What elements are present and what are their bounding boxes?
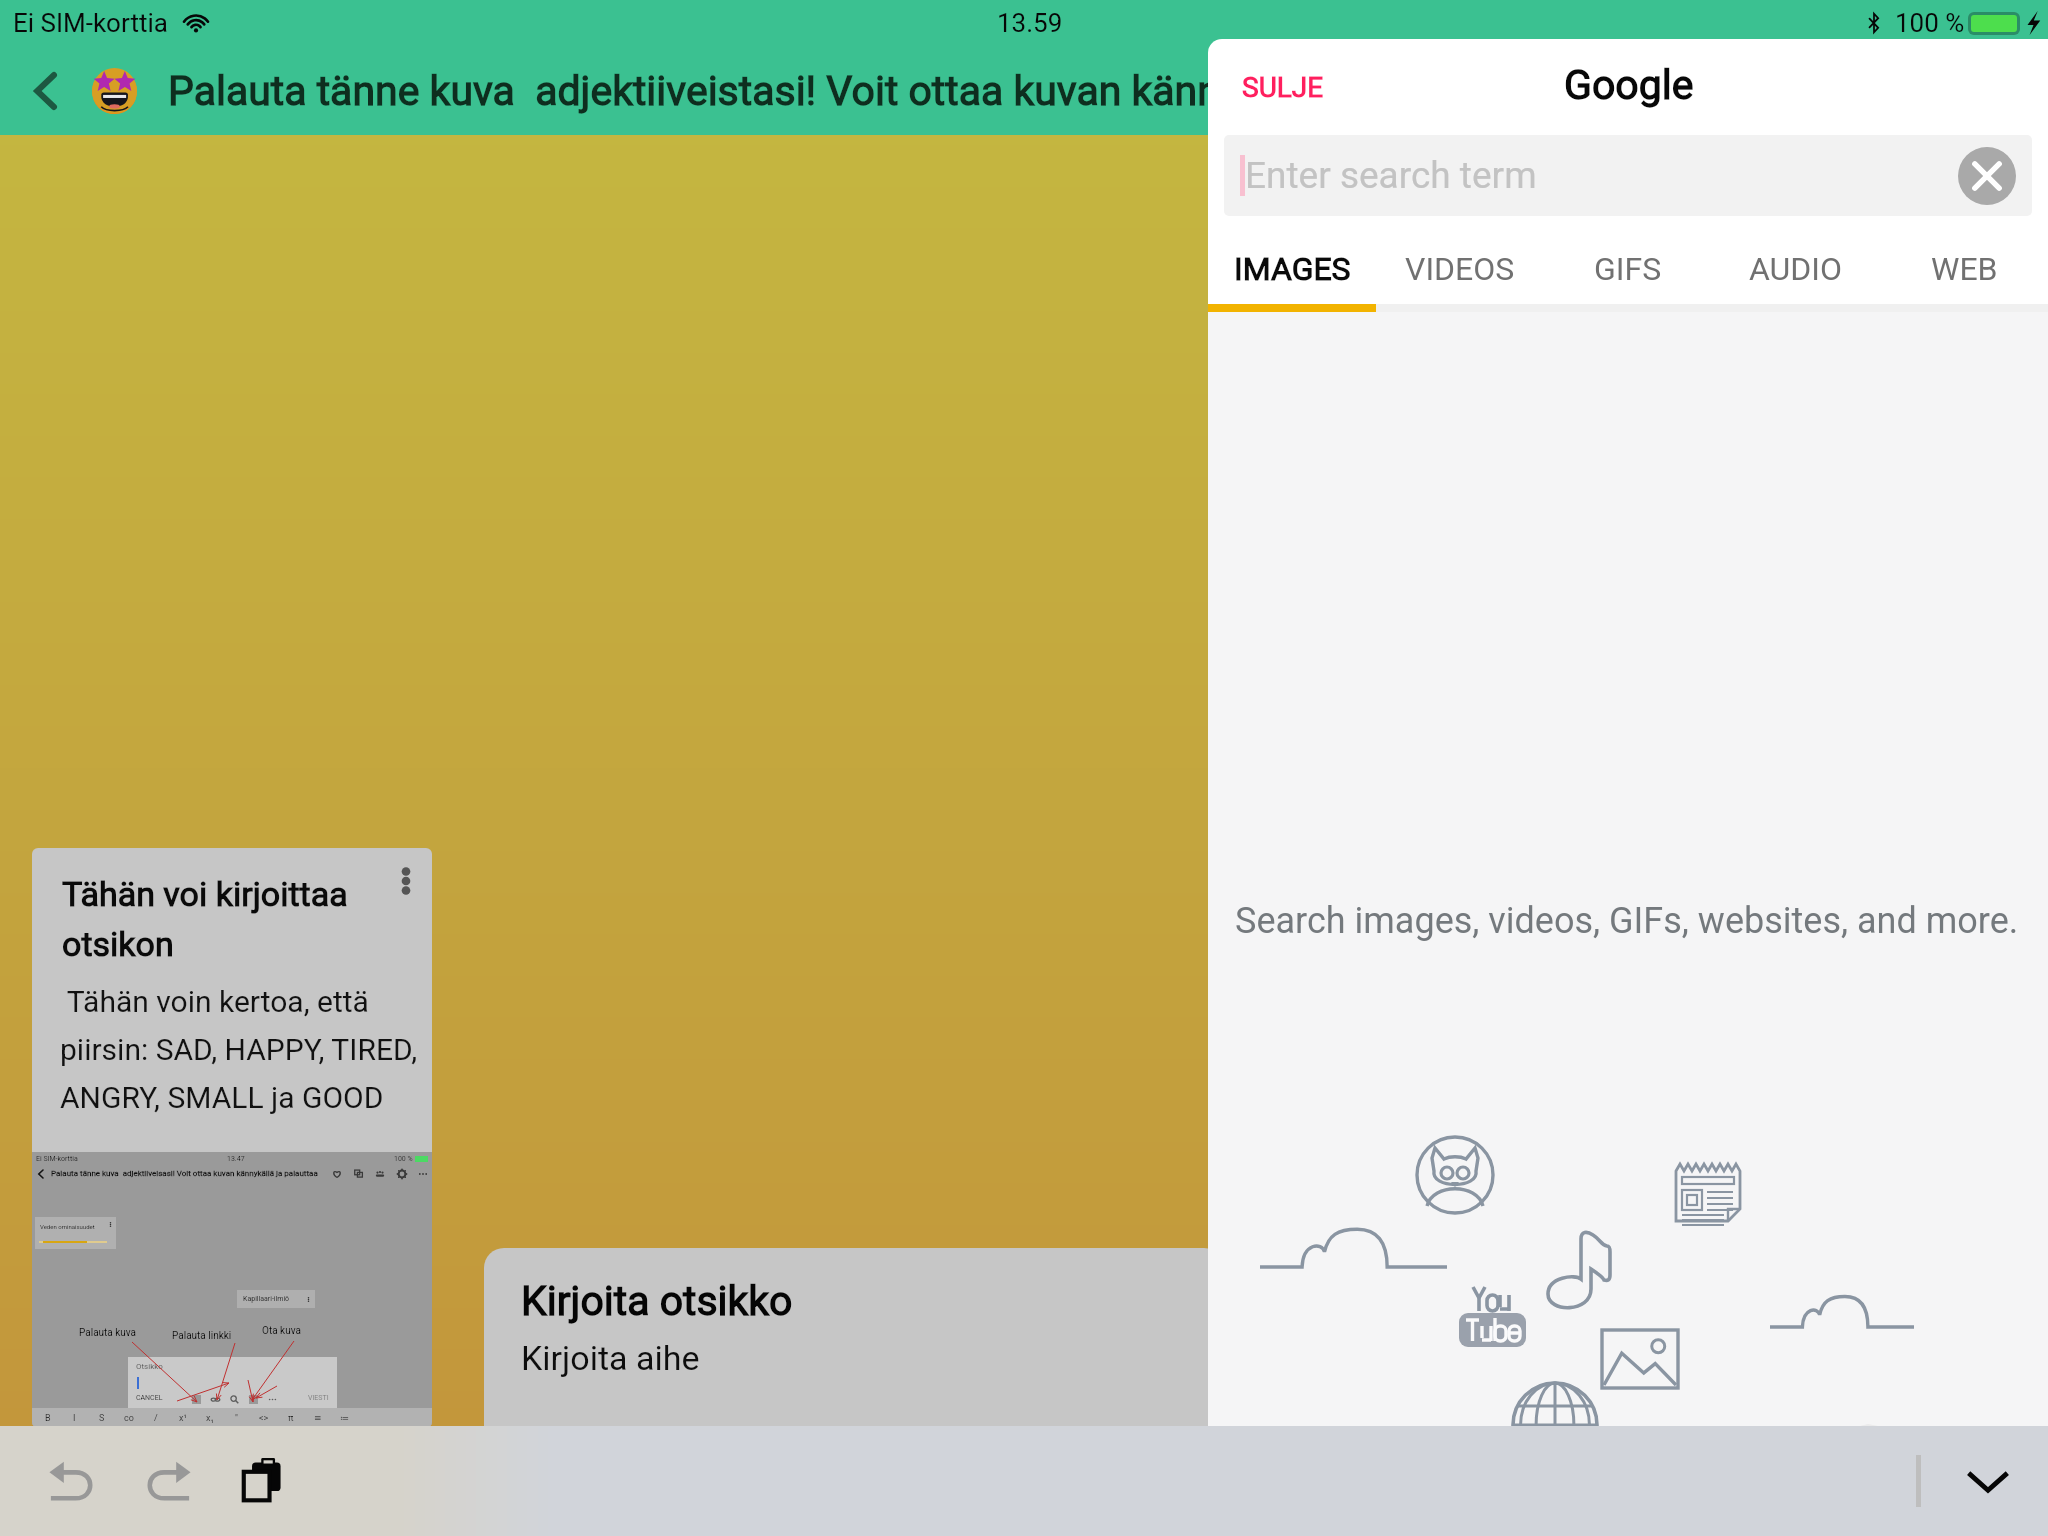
button[interactable]: Clear search (1958, 147, 2016, 205)
staticText: 100 % (394, 1155, 413, 1163)
staticText: / (154, 1413, 158, 1424)
staticText: x₁ (206, 1413, 214, 1424)
button[interactable]: Undo (26, 1435, 118, 1527)
button[interactable]: GIFS (1544, 233, 1712, 304)
staticText: Kapillaari-ilmiö (243, 1295, 290, 1303)
button[interactable]: AUDIO (1712, 233, 1880, 304)
button[interactable]: WEB (1880, 233, 2048, 304)
staticText: Palauta tänne kuva adjektiiveistasi! Voi… (168, 67, 1220, 115)
staticText: SULJE (1242, 71, 1324, 104)
staticText: Kirjoita otsikko (521, 1277, 793, 1325)
staticText: Palauta tänne kuva adjektiiveisasi! Voit… (51, 1169, 322, 1178)
staticText: 100 % (1895, 8, 1965, 38)
button[interactable]: Collapse (1947, 1440, 2029, 1522)
staticText: Enter search term (1245, 154, 1537, 197)
staticText: VIESTI (308, 1394, 329, 1402)
button[interactable]: Back (12, 57, 80, 125)
button[interactable]: Redo (122, 1435, 214, 1527)
staticText: 13.47 (227, 1155, 245, 1163)
staticText: Veden ominaisuudet (40, 1223, 95, 1230)
staticText: ≡ (314, 1413, 322, 1423)
staticText: Search images, videos, GIFs, websites, a… (1235, 900, 2019, 942)
button[interactable]: VIDEOS (1376, 233, 1544, 304)
button[interactable]: More options (381, 856, 431, 906)
staticText: Ei SIM-korttia (36, 1155, 78, 1163)
staticText: x¹ (179, 1413, 187, 1424)
staticText: Tähän voin kertoa, että piirsin: SAD, HA… (60, 984, 430, 1115)
staticText: Palauta kuva (79, 1327, 137, 1339)
button[interactable]: SULJE (1224, 57, 1342, 118)
staticText: Google (1564, 61, 1694, 109)
staticText: IMAGES (1234, 250, 1351, 288)
button[interactable]: Kirjoita otsikko (484, 1248, 1224, 1448)
staticText: ≔ (340, 1413, 349, 1423)
staticText: S (99, 1413, 105, 1424)
staticText: Ei SIM-korttia (13, 8, 168, 38)
staticText: Ota kuva (262, 1325, 301, 1337)
staticText: <> (259, 1413, 269, 1424)
staticText: 13.59 (997, 8, 1063, 38)
button[interactable]: Copy (218, 1435, 310, 1527)
button[interactable]: IMAGES (1208, 233, 1376, 304)
staticText: GIFS (1594, 250, 1662, 288)
staticText: I (73, 1413, 76, 1424)
staticText: Tähän voi kirjoittaa otsikon (62, 874, 390, 965)
staticText: co (124, 1413, 134, 1424)
staticText: " (235, 1413, 238, 1424)
button[interactable]: Tähän voi kirjoittaa otsikon (32, 848, 432, 1428)
staticText: VIDEOS (1405, 250, 1515, 288)
staticText: π (288, 1413, 294, 1424)
staticText: Palauta linkki (172, 1330, 232, 1342)
button[interactable]: Enter search term (1224, 135, 2032, 216)
staticText: CANCEL (136, 1394, 163, 1402)
staticText: Otsikko (136, 1362, 163, 1371)
staticText: B (45, 1413, 51, 1424)
staticText: Kirjoita aihe (521, 1338, 700, 1378)
staticText: WEB (1931, 250, 1998, 288)
staticText: AUDIO (1749, 250, 1843, 288)
